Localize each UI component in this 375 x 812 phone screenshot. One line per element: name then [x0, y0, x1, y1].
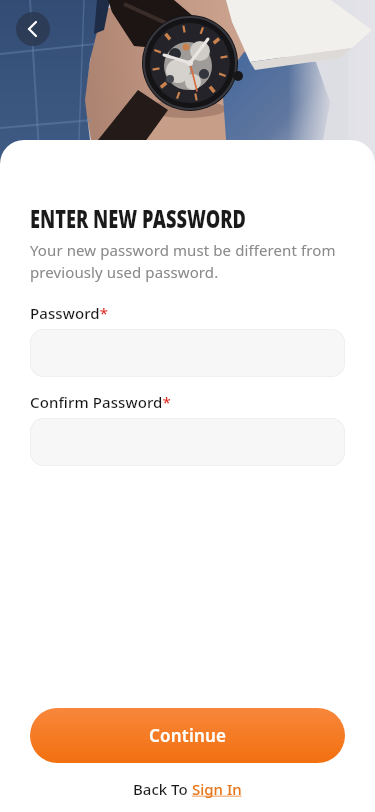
staticText: Continue — [149, 724, 227, 747]
staticText: Confirm Password* — [30, 392, 171, 412]
staticText: Back To — [133, 779, 192, 799]
button[interactable] — [16, 12, 50, 46]
staticText: Sign In — [192, 779, 242, 799]
button[interactable]: Sign In — [192, 779, 242, 799]
staticText: ENTER NEW PASSWORD — [30, 202, 247, 235]
staticText: Password* — [30, 303, 109, 323]
staticText: Your new password must be different from… — [30, 240, 336, 283]
button[interactable]: Continue — [30, 708, 345, 763]
